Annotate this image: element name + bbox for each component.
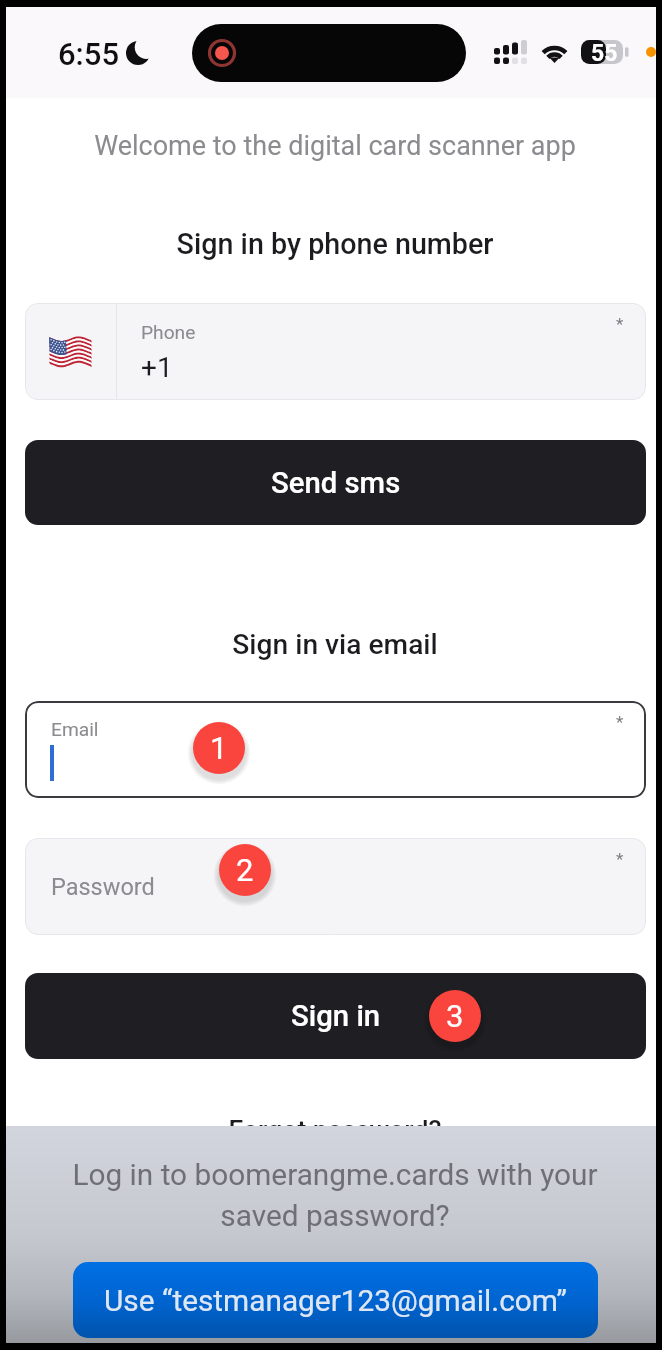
staticText: 2: [236, 852, 254, 888]
staticText: Email: [51, 718, 99, 741]
staticText: Log in to boomerangme.cards with your sa…: [25, 1157, 645, 1234]
staticText: +1: [141, 351, 173, 384]
staticText: Sign in by phone number: [25, 227, 645, 261]
button[interactable]: Password: [25, 838, 646, 935]
staticText: 1: [210, 730, 228, 766]
staticText: 55: [591, 40, 618, 64]
staticText: Forgot password?: [25, 1114, 645, 1145]
staticText: Password: [51, 873, 155, 901]
button[interactable]: Send sms: [25, 440, 646, 525]
staticText: Use “testmanager123@gmail.com”: [104, 1283, 568, 1318]
staticText: *: [616, 849, 624, 869]
staticText: 3: [446, 998, 464, 1034]
other: Wi-Fi: [538, 40, 571, 64]
staticText: *: [616, 314, 624, 334]
button[interactable]: Use “testmanager123@gmail.com”: [73, 1262, 598, 1338]
button[interactable]: Phone: [25, 303, 646, 400]
staticText: *: [616, 712, 624, 732]
staticText: Welcome to the digital card scanner app: [25, 130, 645, 162]
staticText: 6:55: [58, 36, 120, 72]
button[interactable]: Email: [25, 701, 646, 798]
staticText: Send sms: [271, 466, 401, 500]
staticText: Sign in via email: [25, 628, 645, 661]
other: Cellular signal: [494, 40, 527, 64]
staticText: Phone: [141, 321, 196, 344]
staticText: Sign in: [291, 999, 381, 1033]
button[interactable]: Sign in: [25, 973, 646, 1059]
